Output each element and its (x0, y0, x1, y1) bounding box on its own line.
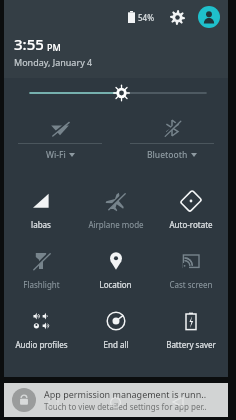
staticText: Bluetooth (147, 149, 188, 161)
staticText: App permission management is runn.. (44, 388, 207, 400)
staticText: Audio profiles (15, 339, 68, 350)
staticText: Touch to view detailed settings for app … (44, 401, 207, 412)
button[interactable]: Recents (40, 389, 66, 415)
button[interactable]: Settings (166, 6, 188, 28)
staticText: 3:55 (14, 34, 44, 54)
button[interactable]: Auto-rotate (153, 180, 228, 240)
button[interactable]: Airplane mode (78, 180, 153, 240)
button[interactable]: App permission management is runn.. (4, 383, 228, 417)
staticText: End all (103, 339, 129, 350)
button[interactable]: User profile (198, 6, 220, 28)
button[interactable]: Brightness (4, 80, 228, 106)
staticText: Location (99, 279, 132, 290)
button[interactable]: Wi-Fi (4, 112, 116, 174)
staticText: Airplane mode (88, 219, 144, 230)
staticText: Monday, January 4 (14, 56, 93, 68)
button[interactable]: Battery saver (153, 300, 228, 360)
staticText: Wi-Fi (46, 149, 66, 161)
staticText: 54% (138, 12, 154, 23)
staticText: Auto-rotate (169, 219, 213, 230)
staticText: Cast screen (169, 279, 213, 290)
staticText: PM (47, 41, 61, 53)
button[interactable]: Back (165, 389, 191, 415)
staticText: Battery saver (166, 339, 216, 350)
staticText: labas (31, 219, 51, 230)
button[interactable]: Audio profiles (4, 300, 78, 360)
button[interactable]: Home (102, 389, 128, 415)
button[interactable]: labas (4, 180, 78, 240)
button[interactable]: Flashlight (4, 240, 78, 300)
button[interactable]: End all (78, 300, 153, 360)
button[interactable]: Cast screen (153, 240, 228, 300)
button[interactable]: Location (78, 240, 153, 300)
staticText: Flashlight (23, 279, 60, 290)
button[interactable]: Bluetooth (116, 112, 228, 174)
